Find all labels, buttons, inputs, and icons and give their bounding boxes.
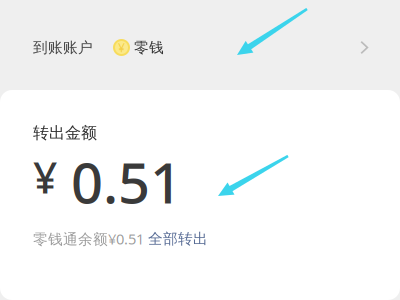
- button[interactable]: 到账账户: [0, 0, 400, 90]
- staticText: 零钱: [134, 38, 164, 56]
- staticText: 0.51: [71, 145, 182, 219]
- staticText: 到账账户: [33, 38, 93, 56]
- button[interactable]: 全部转出: [148, 230, 208, 248]
- staticText: 全部转出: [148, 230, 208, 248]
- staticText: 零钱通余额¥0.51: [33, 229, 144, 248]
- staticText: 转出金额: [33, 123, 97, 143]
- staticText: ¥: [118, 39, 125, 55]
- staticText: ¥: [33, 149, 57, 205]
